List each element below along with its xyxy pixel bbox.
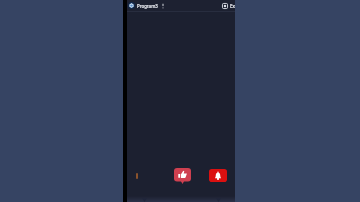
button[interactable]: Like [174,168,191,186]
staticText: Program3 [137,3,158,9]
button[interactable]: Notifications [209,169,227,182]
staticText: Exit [230,3,235,9]
button[interactable]: Profile [216,198,221,202]
button[interactable]: Exit [222,3,235,9]
button[interactable]: More options [161,0,165,11]
button[interactable]: Home [142,198,147,202]
